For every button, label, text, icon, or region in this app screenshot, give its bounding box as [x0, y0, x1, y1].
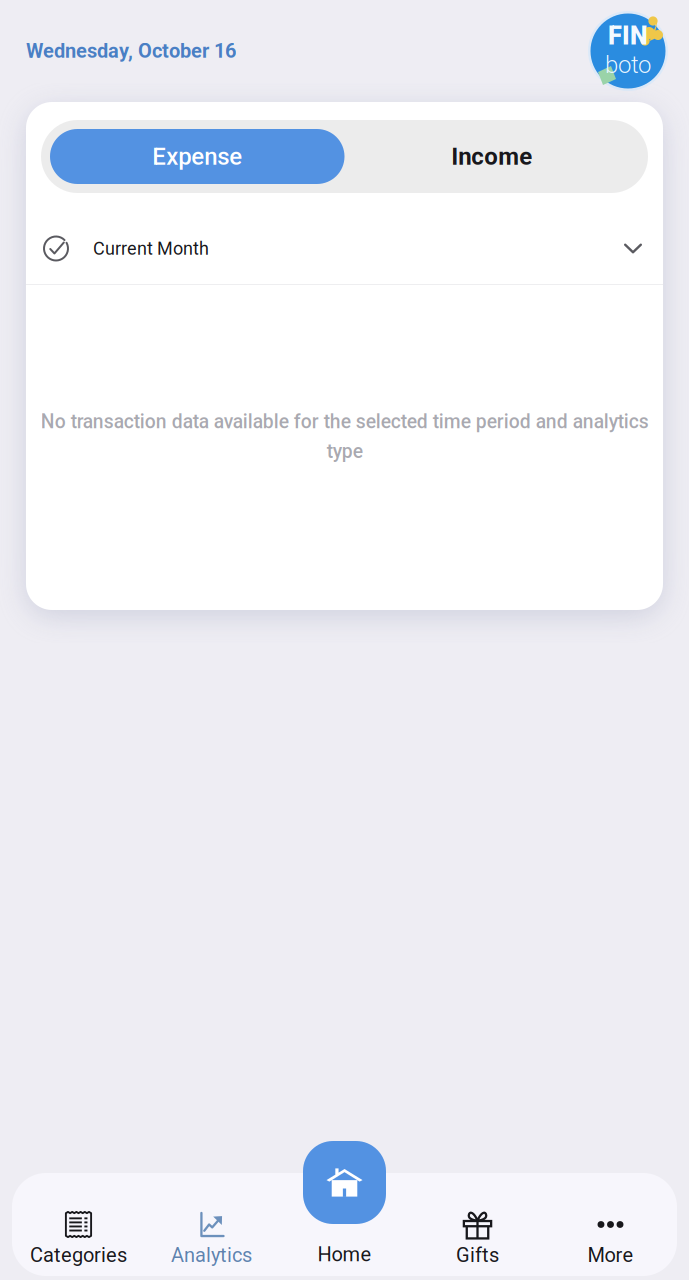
staticText: Current Month — [93, 238, 209, 259]
button[interactable]: Categories — [12, 1200, 145, 1272]
staticText: Analytics — [171, 1243, 252, 1267]
button[interactable]: Home — [278, 1200, 411, 1272]
button[interactable]: Analytics — [145, 1200, 278, 1272]
staticText: Categories — [30, 1243, 127, 1267]
staticText: boto — [605, 51, 651, 79]
button[interactable]: Current Month — [26, 193, 663, 284]
button[interactable]: Expense — [50, 129, 344, 184]
staticText: Expense — [152, 142, 242, 170]
staticText: Gifts — [456, 1243, 499, 1267]
staticText: FIN — [608, 21, 648, 51]
staticText: No transaction data available for the se… — [40, 410, 648, 463]
button[interactable]: Gifts — [411, 1200, 544, 1272]
staticText: More — [587, 1243, 633, 1267]
staticText: Wednesday, October 16 — [26, 39, 236, 63]
staticText: Home — [317, 1243, 371, 1266]
staticText: Income — [451, 142, 532, 170]
button[interactable]: Income — [344, 129, 639, 184]
button[interactable]: More — [544, 1200, 677, 1272]
button[interactable]: Home — [303, 1141, 386, 1224]
button[interactable]: FINboto account — [587, 10, 669, 92]
